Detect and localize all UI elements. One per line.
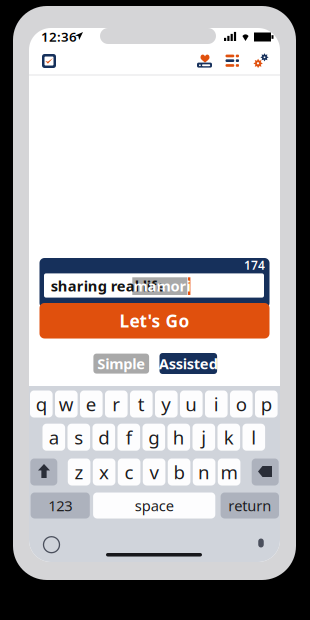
button[interactable]: d [92,424,115,451]
button[interactable]: List [224,53,241,69]
staticText: 174 [244,257,265,273]
button[interactable]: r [105,390,128,417]
button[interactable]: e [80,390,103,417]
staticText: space [135,496,174,515]
staticText: t [138,392,145,416]
button[interactable]: n [193,458,215,485]
staticText: b [174,460,185,484]
staticText: k [224,425,234,450]
button[interactable]: j [192,424,215,451]
button[interactable]: 123 [31,492,90,518]
staticText: r [112,392,120,416]
staticText: y [161,392,171,416]
staticText: j [201,425,206,450]
staticText: i [214,392,219,416]
button[interactable]: w [55,390,78,417]
staticText: 12:36 [41,28,77,45]
staticText: o [236,392,247,416]
button[interactable]: a [42,424,65,451]
staticText: p [261,392,272,416]
button[interactable]: Tasks [42,54,56,68]
button[interactable]: f [117,424,140,451]
button[interactable]: Simple [93,354,149,374]
staticText: g [148,425,159,450]
staticText: c [125,460,134,484]
button[interactable]: return [221,492,279,518]
staticText: mamories [133,276,206,295]
button[interactable]: o [230,390,253,417]
button[interactable]: g [142,424,165,451]
button[interactable]: x [93,458,115,485]
staticText: w [59,392,74,416]
button[interactable]: space [93,492,215,518]
button[interactable]: s [67,424,90,451]
button[interactable]: t [130,390,153,417]
button[interactable]: k [217,424,240,451]
staticText: 123 [48,496,72,515]
button[interactable]: m [218,458,240,485]
button[interactable]: q [30,390,53,417]
button[interactable]: i [205,390,228,417]
staticText: sharing real life [51,276,166,295]
button[interactable]: Let's Go [39,303,269,338]
staticText: Assisted [159,354,218,373]
staticText: x [99,460,109,484]
staticText: e [86,392,97,416]
button[interactable]: Settings [253,52,269,69]
staticText: z [75,460,84,484]
button[interactable]: Switch keyboard [43,537,59,553]
staticText: h [173,425,185,450]
staticText: l [251,425,256,450]
staticText: Let's Go [119,309,189,332]
button[interactable]: l [242,424,265,451]
button[interactable]: h [167,424,190,451]
staticText: d [98,425,109,450]
button[interactable]: Dictate [258,538,264,547]
button[interactable]: p [255,390,278,417]
button[interactable]: Shift [30,458,57,485]
staticText: Simple [97,354,145,373]
button[interactable]: z [68,458,90,485]
button[interactable]: Assisted [159,353,217,374]
staticText: s [74,425,83,450]
button[interactable]: c [118,458,140,485]
button[interactable]: y [155,390,178,417]
staticText: q [36,392,47,416]
staticText: m [221,460,238,484]
staticText: u [185,392,197,416]
button[interactable]: Favorites [196,53,214,69]
button[interactable]: b [168,458,190,485]
button[interactable]: v [143,458,165,485]
staticText: n [198,460,210,484]
staticText: f [126,425,132,450]
staticText: v [150,460,159,484]
staticText: a [49,425,59,450]
button[interactable]: Delete [252,458,279,485]
staticText: return [228,496,271,515]
button[interactable]: u [180,390,203,417]
